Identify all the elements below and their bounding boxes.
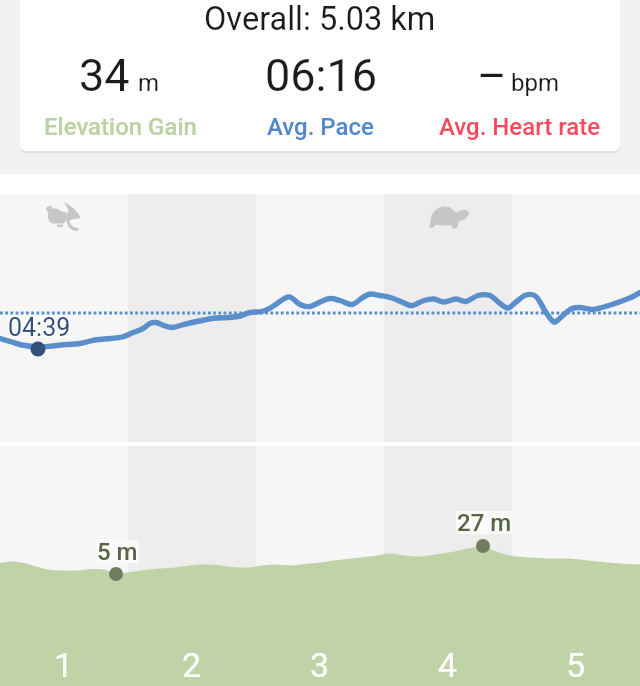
staticText: 2 (182, 645, 202, 685)
staticText: 4 (438, 645, 458, 685)
staticText: 06:16 (265, 49, 378, 102)
staticText: 34 (79, 49, 130, 102)
staticText: m (138, 69, 160, 97)
staticText: Avg. Pace (267, 113, 374, 141)
staticText: bpm (511, 69, 559, 97)
staticText: 04:39 (8, 313, 71, 342)
staticText: – (477, 49, 507, 102)
staticText: 5 m (97, 538, 138, 566)
staticText: Avg. Heart rate (439, 113, 601, 141)
staticText: 27 m (457, 509, 512, 537)
staticText: 5 (566, 645, 586, 685)
staticText: Elevation Gain (44, 113, 197, 141)
staticText: 3 (310, 645, 330, 685)
staticText: 1 (54, 645, 74, 685)
staticText: Overall: 5.03 km (204, 0, 436, 38)
button[interactable]: Overall: 5.03 km (20, 0, 620, 151)
